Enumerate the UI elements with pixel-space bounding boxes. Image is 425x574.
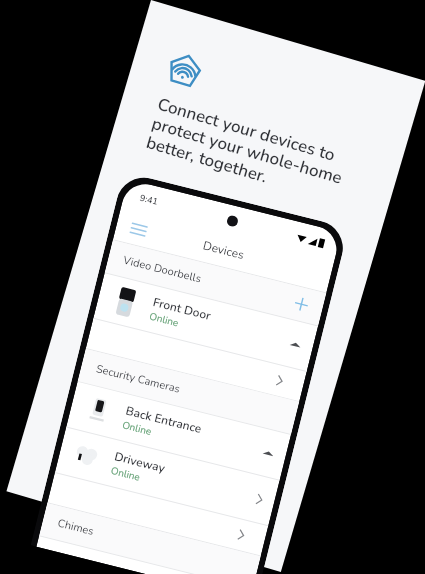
button[interactable]: Open navigation menu: [124, 214, 153, 244]
staticText: Chimes: [56, 515, 95, 539]
button[interactable]: Video Doorbells: [105, 240, 326, 325]
staticText: Video Doorbells: [121, 253, 203, 286]
button[interactable]: Driveway: [55, 427, 280, 525]
button[interactable]: Back Entrance: [66, 382, 291, 480]
button[interactable]: Chimes: [39, 503, 261, 574]
button[interactable]: [86, 319, 307, 401]
staticText: Front Door: [151, 294, 213, 324]
staticText: Connect your devices to protect your who…: [143, 93, 351, 209]
button[interactable]: Front Door: [93, 273, 318, 371]
staticText: Online: [148, 309, 180, 330]
staticText: Driveway: [113, 448, 167, 476]
button[interactable]: Security Cameras: [78, 349, 299, 434]
staticText: 9:41: [138, 192, 160, 208]
button[interactable]: [47, 473, 268, 555]
staticText: Security Cameras: [94, 361, 182, 397]
staticText: Devices: [201, 237, 246, 263]
staticText: Back Entrance: [124, 403, 204, 437]
staticText: Online: [121, 418, 153, 439]
staticText: Online: [109, 464, 142, 485]
